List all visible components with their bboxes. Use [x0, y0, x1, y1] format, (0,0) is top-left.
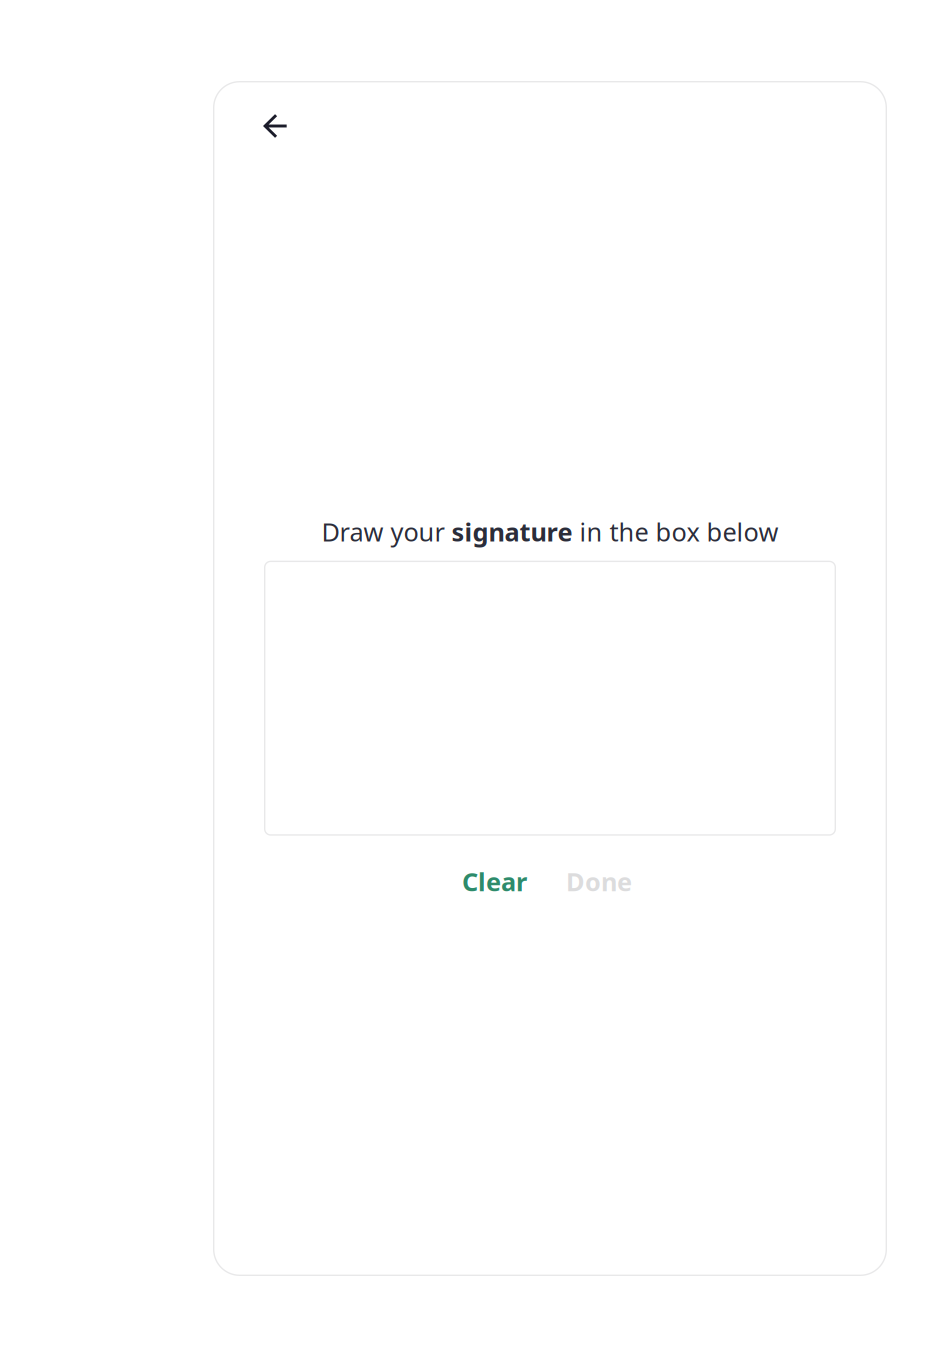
- button[interactable]: Done: [561, 861, 637, 902]
- button[interactable]: Back: [252, 103, 298, 149]
- staticText: Draw your signature in the box below: [321, 515, 778, 548]
- staticText: Clear: [462, 865, 527, 898]
- staticText: Done: [566, 865, 632, 898]
- button[interactable]: Clear: [457, 861, 532, 902]
